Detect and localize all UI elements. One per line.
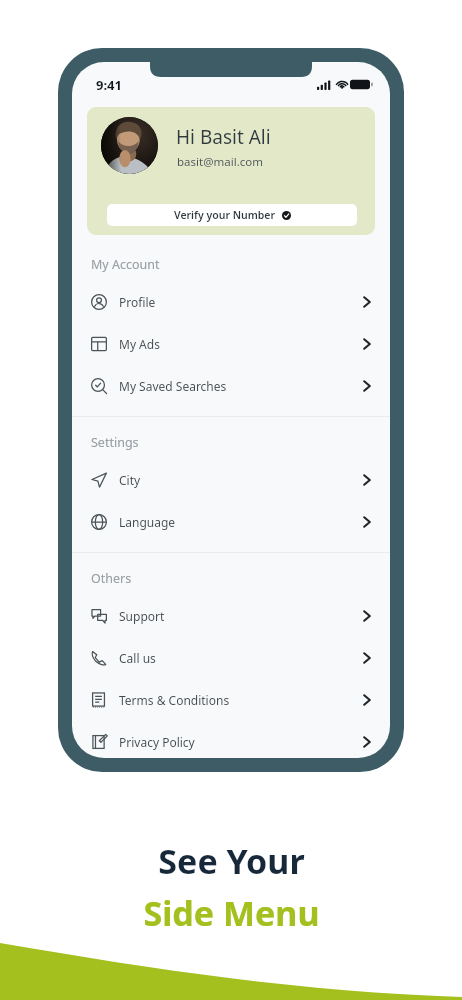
staticText: Terms & Conditions	[119, 692, 230, 708]
other: Open Terms & Conditions	[363, 693, 371, 707]
button[interactable]: My Ads	[72, 323, 390, 365]
staticText: See Your	[158, 838, 305, 884]
button[interactable]: Verify your Number	[107, 204, 357, 226]
staticText: Others	[91, 570, 132, 587]
other: Open Language	[363, 515, 371, 529]
other: Open City	[363, 473, 371, 487]
staticText: City	[119, 472, 141, 488]
other: Open Profile	[363, 295, 371, 309]
other: Open Support	[363, 609, 371, 623]
button[interactable]: Support	[72, 595, 390, 637]
staticText: Profile	[119, 294, 156, 310]
staticText: My Saved Searches	[119, 378, 227, 394]
button[interactable]: Call us	[72, 637, 390, 679]
staticText: basit@mail.com	[177, 154, 263, 170]
staticText: My Account	[91, 256, 160, 273]
staticText: Side Menu	[143, 890, 320, 936]
staticText: My Ads	[119, 336, 160, 352]
button[interactable]: Language	[72, 501, 390, 543]
other: Open Call us	[363, 651, 371, 665]
button[interactable]: City	[72, 459, 390, 501]
other: Open Privacy Policy	[363, 735, 371, 749]
staticText: Verify your Number	[174, 208, 276, 222]
staticText: Settings	[91, 434, 139, 451]
staticText: Call us	[119, 650, 156, 666]
staticText: Hi Basit Ali	[176, 124, 271, 150]
other: Open My Ads	[363, 337, 371, 351]
staticText: Support	[119, 608, 165, 624]
button[interactable]: My Saved Searches	[72, 365, 390, 407]
button[interactable]: Hi Basit Ali	[87, 107, 375, 235]
button[interactable]: Privacy Policy	[72, 721, 390, 758]
other: Open My Saved Searches	[363, 379, 371, 393]
staticText: Privacy Policy	[119, 734, 195, 750]
button[interactable]: Terms & Conditions	[72, 679, 390, 721]
staticText: Language	[119, 514, 176, 530]
staticText: 9:41	[96, 76, 122, 94]
button[interactable]: Profile	[72, 281, 390, 323]
